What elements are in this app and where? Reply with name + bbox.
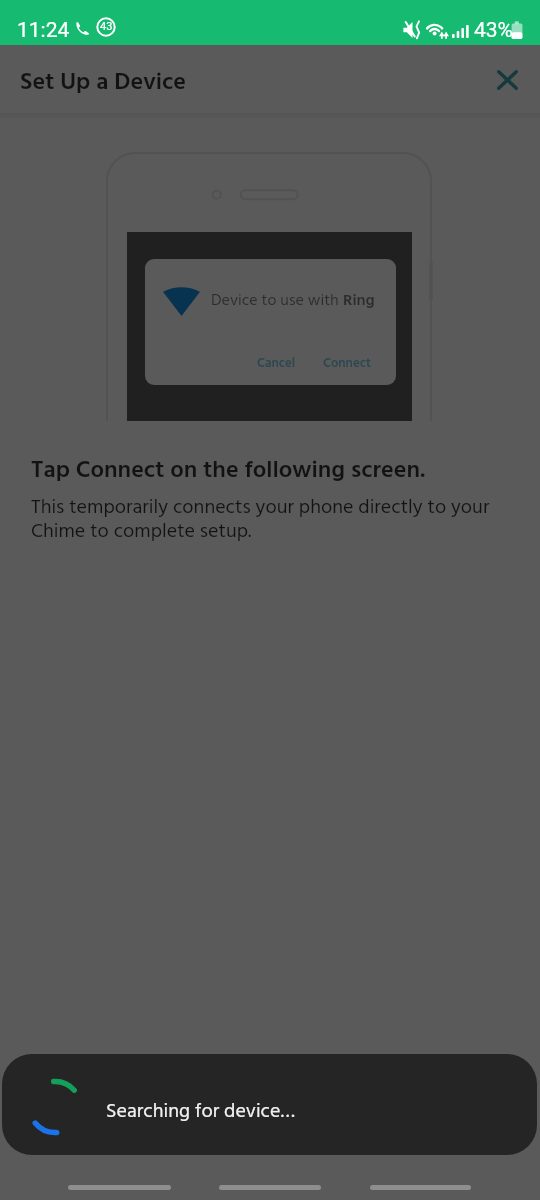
button[interactable]: Connect (323, 353, 371, 374)
staticText: 43% (474, 18, 513, 43)
staticText: Searching for device… (106, 1096, 295, 1128)
staticText: This temporarily connects your phone dir… (31, 492, 490, 548)
staticText: Ring (343, 288, 375, 314)
button[interactable]: Searching for device… (2, 1054, 537, 1155)
staticText: 43 (100, 20, 113, 33)
staticText: Set Up a Device (20, 64, 187, 102)
staticText: Device to use with (211, 288, 343, 314)
button[interactable]: Close (484, 56, 531, 103)
staticText: Tap Connect on the following screen. (31, 452, 426, 490)
button[interactable]: Cancel (257, 353, 296, 374)
staticText: 11:24 (17, 18, 70, 43)
